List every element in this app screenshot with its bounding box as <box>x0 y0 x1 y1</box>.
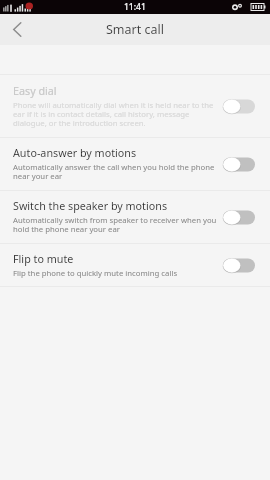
staticText: Flip the phone to quickly mute incoming … <box>13 268 178 279</box>
staticText: 11:41 <box>124 1 146 13</box>
staticText: Smart call <box>106 21 164 38</box>
button[interactable]: Back <box>0 14 34 45</box>
button[interactable]: Toggle <box>223 157 255 172</box>
button[interactable]: Easy dial <box>0 75 270 137</box>
button[interactable]: Switch the speaker by motions <box>0 191 270 243</box>
staticText: Flip to mute <box>13 252 74 267</box>
staticText: Easy dial <box>13 84 57 99</box>
button[interactable]: Flip to mute <box>0 244 270 286</box>
staticText: Automatically answer the call when you h… <box>13 162 220 182</box>
staticText: Automatically switch from speaker to rec… <box>13 215 220 235</box>
staticText: Auto-answer by motions <box>13 146 137 161</box>
button[interactable]: Toggle <box>223 258 255 273</box>
button[interactable]: Auto-answer by motions <box>0 138 270 190</box>
button[interactable]: Toggle <box>223 99 255 114</box>
staticText: Phone will automatically dial when it is… <box>13 100 220 129</box>
button[interactable]: Toggle <box>223 210 255 225</box>
staticText: Switch the speaker by motions <box>13 199 168 214</box>
